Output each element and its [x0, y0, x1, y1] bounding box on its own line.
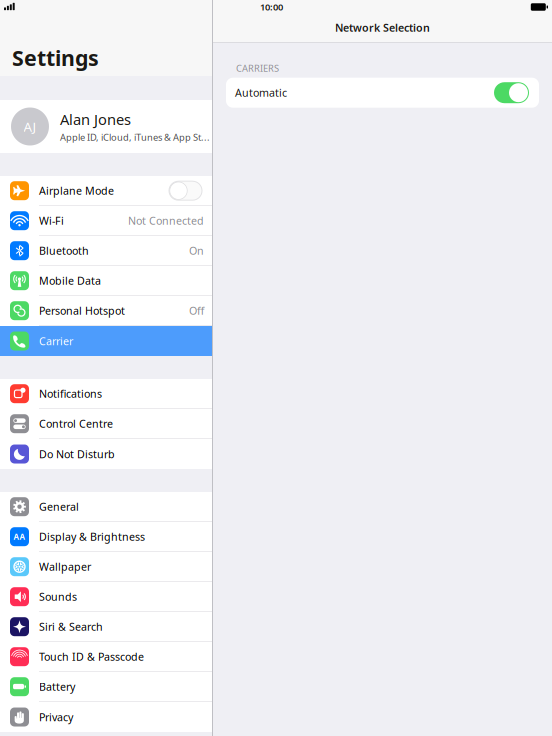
button[interactable]: Siri & Search [0, 612, 212, 642]
button[interactable]: Mobile Data [0, 266, 212, 296]
button[interactable]: General [0, 492, 212, 522]
staticText: Display & Brightness [39, 530, 145, 544]
staticText: Sounds [39, 590, 77, 604]
staticText: General [39, 500, 79, 514]
staticText: Settings [12, 44, 99, 72]
staticText: Airplane Mode [39, 184, 114, 198]
button[interactable]: Touch ID & Passcode [0, 642, 212, 672]
staticText: Bluetooth [39, 244, 89, 258]
staticText: Off [189, 304, 204, 318]
staticText: Notifications [39, 387, 102, 401]
staticText: Apple ID, iCloud, iTunes & App St... [60, 131, 210, 143]
button[interactable]: Privacy [0, 702, 212, 732]
button[interactable]: Wallpaper [0, 552, 212, 582]
staticText: Battery [39, 680, 75, 694]
button[interactable]: Control Centre [0, 409, 212, 439]
staticText: Wi-Fi [39, 214, 64, 228]
staticText: Control Centre [39, 417, 113, 431]
button[interactable]: AJ [0, 100, 212, 153]
staticText: Automatic [235, 86, 287, 100]
button[interactable]: Airplane Mode [0, 176, 212, 206]
staticText: Network Selection [335, 20, 430, 35]
staticText: 10:00 [260, 1, 283, 13]
staticText: Touch ID & Passcode [39, 650, 144, 664]
button[interactable]: Battery [0, 672, 212, 702]
button[interactable]: Bluetooth [0, 236, 212, 266]
button[interactable]: Automatic [226, 78, 539, 108]
staticText: Siri & Search [39, 620, 103, 634]
staticText: Wallpaper [39, 560, 91, 574]
staticText: Privacy [39, 710, 73, 724]
staticText: CARRIERS [236, 62, 279, 74]
button[interactable]: Carrier [0, 326, 212, 356]
button[interactable]: Wi-Fi [0, 206, 212, 236]
staticText: Personal Hotspot [39, 304, 125, 318]
staticText: Alan Jones [60, 110, 131, 129]
button[interactable]: AA [0, 522, 212, 552]
staticText: Not Connected [128, 214, 204, 228]
button[interactable]: Personal Hotspot [0, 296, 212, 326]
staticText: On [189, 244, 204, 258]
button[interactable]: Sounds [0, 582, 212, 612]
staticText: Mobile Data [39, 274, 101, 288]
staticText: Do Not Disturb [39, 447, 115, 461]
button[interactable]: Notifications [0, 379, 212, 409]
button[interactable]: Do Not Disturb [0, 439, 212, 469]
staticText: Carrier [39, 334, 73, 348]
staticText: AA [13, 531, 25, 542]
staticText: AJ [23, 118, 36, 135]
